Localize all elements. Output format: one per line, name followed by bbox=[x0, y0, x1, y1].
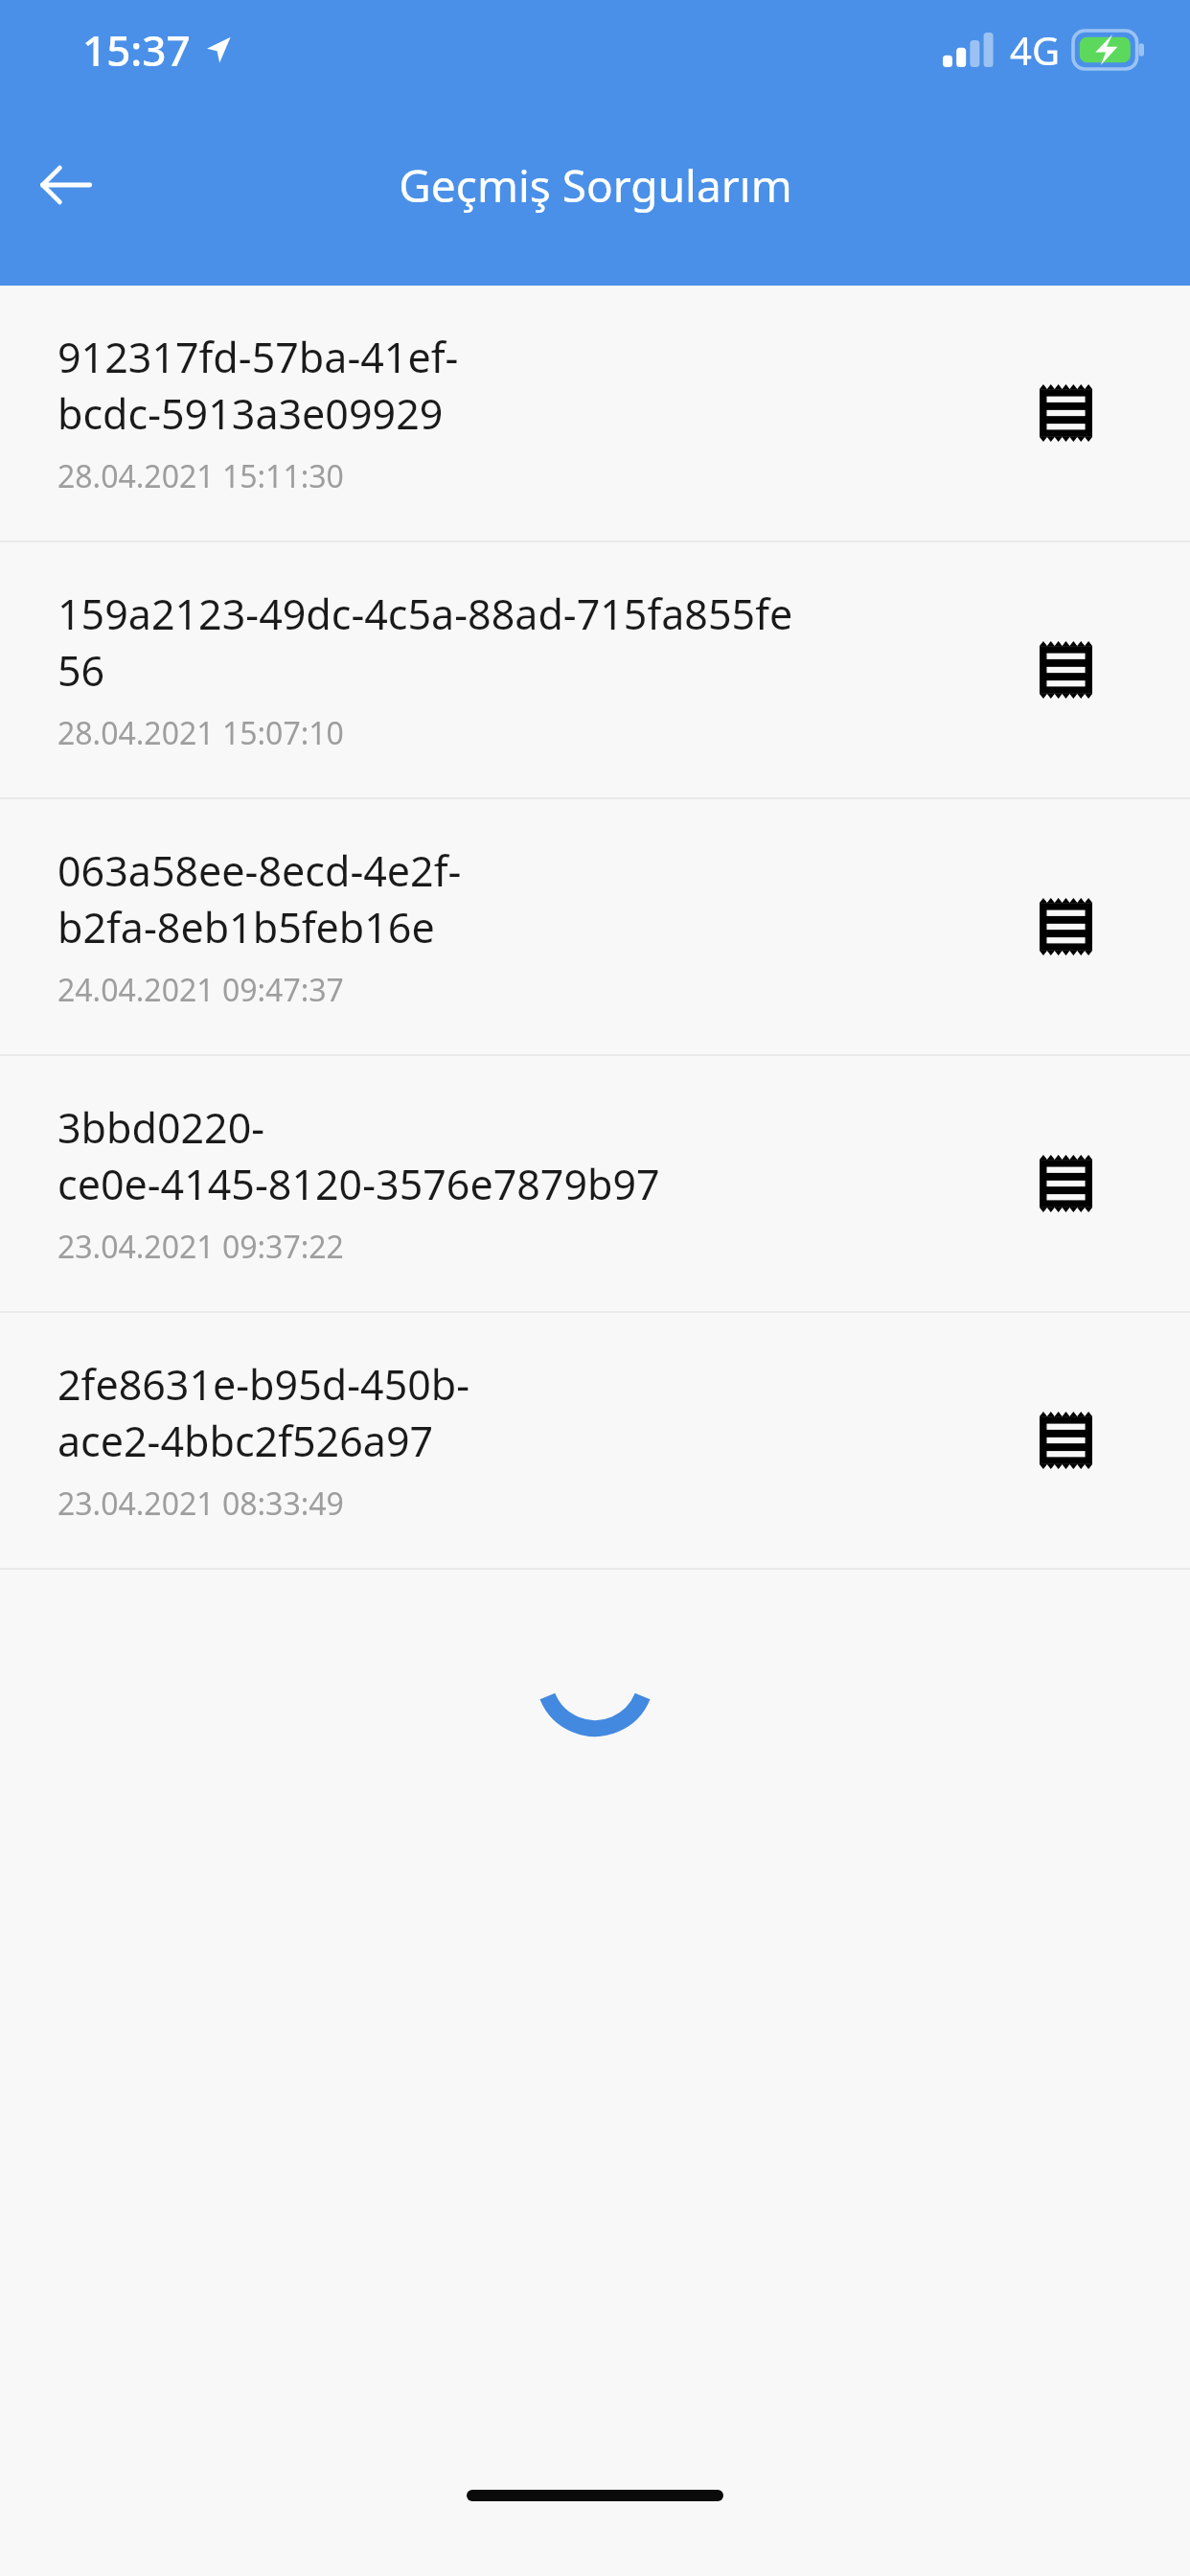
staticText: 56 bbox=[57, 642, 105, 699]
button[interactable]: Receipt bbox=[1019, 367, 1111, 459]
button[interactable]: Receipt bbox=[1019, 624, 1111, 716]
staticText: 28.04.2021 15:11:30 bbox=[57, 455, 344, 497]
staticText: b2fa-8eb1b5feb16e bbox=[57, 899, 435, 955]
staticText: 912317fd-57ba-41ef- bbox=[57, 329, 459, 385]
staticText: 23.04.2021 09:37:22 bbox=[57, 1226, 344, 1268]
staticText: Geçmiş Sorgularım bbox=[399, 155, 792, 216]
staticText: 4G bbox=[1010, 24, 1060, 76]
staticText: 063a58ee-8ecd-4e2f- bbox=[57, 842, 462, 899]
button[interactable]: 912317fd-57ba-41ef- bbox=[0, 286, 1190, 540]
button[interactable]: Receipt bbox=[1019, 1394, 1111, 1486]
button[interactable]: 3bbd0220- bbox=[0, 1056, 1190, 1311]
button[interactable]: Back bbox=[19, 139, 111, 231]
staticText: 28.04.2021 15:07:10 bbox=[57, 712, 344, 754]
staticText: 159a2123-49dc-4c5a-88ad-715fa855fe bbox=[57, 586, 793, 642]
staticText: 3bbd0220- bbox=[57, 1099, 265, 1156]
staticText: 2fe8631e-b95d-450b- bbox=[57, 1356, 470, 1413]
button[interactable]: 159a2123-49dc-4c5a-88ad-715fa855fe bbox=[0, 542, 1190, 797]
button[interactable]: 2fe8631e-b95d-450b- bbox=[0, 1313, 1190, 1568]
staticText: 23.04.2021 08:33:49 bbox=[57, 1483, 344, 1525]
staticText: ce0e-4145-8120-3576e7879b97 bbox=[57, 1156, 660, 1212]
staticText: bcdc-5913a3e09929 bbox=[57, 385, 444, 442]
staticText: 15:37 bbox=[82, 21, 191, 79]
button[interactable]: Receipt bbox=[1019, 1138, 1111, 1230]
staticText: ace2-4bbc2f526a97 bbox=[57, 1413, 434, 1469]
button[interactable]: Receipt bbox=[1019, 881, 1111, 973]
button[interactable]: 063a58ee-8ecd-4e2f- bbox=[0, 799, 1190, 1054]
staticText: 24.04.2021 09:47:37 bbox=[57, 969, 344, 1011]
